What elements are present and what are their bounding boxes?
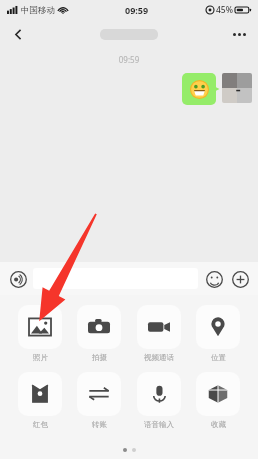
button[interactable]: 转账 xyxy=(72,372,126,429)
staticText: 中国移动 xyxy=(21,5,55,16)
button[interactable]: 红包 xyxy=(13,372,67,429)
staticText: 收藏 xyxy=(211,420,226,429)
staticText: 转账 xyxy=(92,420,107,429)
button[interactable]: 收藏 xyxy=(191,372,245,429)
button[interactable]: Emoji xyxy=(202,267,226,291)
button[interactable]: 视频通话 xyxy=(132,305,186,362)
button[interactable]: Avatar xyxy=(222,73,252,103)
staticText: 45% xyxy=(216,4,233,16)
button[interactable]: 照片 xyxy=(13,305,67,362)
button[interactable]: 拍摄 xyxy=(72,305,126,362)
button[interactable]: Message input xyxy=(33,268,198,289)
staticText: 红包 xyxy=(33,420,48,429)
button[interactable]: More options xyxy=(225,20,253,48)
staticText: 照片 xyxy=(33,353,48,362)
staticText: 09:59 xyxy=(0,54,258,65)
button[interactable]: Voice message xyxy=(6,267,30,291)
staticText: 视频通话 xyxy=(144,353,174,362)
button[interactable]: Back xyxy=(4,20,32,48)
staticText: 语音输入 xyxy=(144,420,174,429)
staticText: 拍摄 xyxy=(92,353,107,362)
button[interactable] xyxy=(182,73,216,105)
button[interactable]: More functions xyxy=(228,267,252,291)
staticText: 位置 xyxy=(211,353,226,362)
button[interactable]: 语音输入 xyxy=(132,372,186,429)
staticText: 09:59 xyxy=(125,4,149,16)
button[interactable]: 位置 xyxy=(191,305,245,362)
